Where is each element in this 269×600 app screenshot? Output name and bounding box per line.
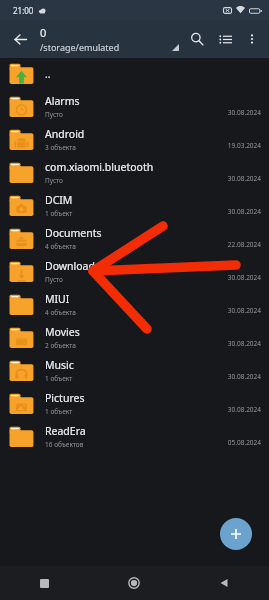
- staticText: /storage/emulated: [40, 41, 120, 53]
- staticText: 30.08.2024: [227, 372, 261, 381]
- button[interactable]: Music: [0, 354, 269, 387]
- staticText: ..: [45, 67, 51, 81]
- button[interactable]: Alarms: [0, 90, 269, 123]
- staticText: 4 объекта: [45, 308, 76, 317]
- staticText: 30.08.2024: [227, 207, 261, 216]
- staticText: 30.08.2024: [227, 339, 261, 348]
- button[interactable]: Search: [183, 25, 211, 53]
- staticText: 3 объекта: [45, 143, 76, 152]
- button[interactable]: ReadEra: [0, 420, 269, 453]
- staticText: 19.03.2024: [227, 141, 261, 150]
- staticText: 1 объект: [45, 209, 73, 218]
- button[interactable]: Back: [6, 25, 34, 53]
- staticText: Pictures: [45, 391, 85, 405]
- staticText: Alarms: [45, 94, 80, 108]
- staticText: 30.08.2024: [227, 108, 261, 117]
- staticText: Пусто: [45, 176, 63, 185]
- staticText: 30.08.2024: [227, 405, 261, 414]
- button[interactable]: Add: [220, 518, 252, 550]
- staticText: 22.08.2024: [227, 240, 261, 249]
- button[interactable]: Pictures: [0, 387, 269, 420]
- button[interactable]: Recents: [0, 566, 89, 600]
- button[interactable]: DCIM: [0, 189, 269, 222]
- staticText: Download: [45, 259, 95, 273]
- button[interactable]: Back: [179, 566, 269, 600]
- staticText: 1 объект: [45, 374, 73, 383]
- staticText: Movies: [45, 325, 80, 339]
- staticText: 1 объект: [45, 407, 73, 416]
- staticText: 21:00: [13, 5, 34, 16]
- staticText: 30.08.2024: [227, 273, 261, 282]
- button[interactable]: com.xiaomi.bluetooth: [0, 156, 269, 189]
- button[interactable]: Android: [0, 123, 269, 156]
- staticText: 4 объекта: [45, 242, 76, 251]
- staticText: 05.08.2024: [227, 438, 261, 447]
- staticText: Пусто: [45, 275, 63, 284]
- button[interactable]: Download: [0, 255, 269, 288]
- button[interactable]: More options: [239, 26, 265, 52]
- staticText: Music: [45, 358, 74, 372]
- staticText: 30.08.2024: [227, 306, 261, 315]
- button[interactable]: View mode: [211, 25, 239, 53]
- staticText: ReadEra: [45, 424, 86, 438]
- staticText: 16 объектов: [45, 440, 84, 449]
- staticText: 30.08.2024: [227, 174, 261, 183]
- button[interactable]: Movies: [0, 321, 269, 354]
- staticText: DCIM: [45, 193, 73, 207]
- staticText: 2 объекта: [45, 341, 76, 350]
- button[interactable]: Documents: [0, 222, 269, 255]
- button[interactable]: ..: [0, 58, 269, 90]
- staticText: MIUI: [45, 292, 70, 306]
- button[interactable]: MIUI: [0, 288, 269, 321]
- button[interactable]: Home: [89, 566, 179, 600]
- staticText: com.xiaomi.bluetooth: [45, 160, 154, 174]
- staticText: 0: [40, 25, 47, 40]
- staticText: Documents: [45, 226, 102, 240]
- staticText: Пусто: [45, 110, 63, 119]
- staticText: Android: [45, 127, 85, 141]
